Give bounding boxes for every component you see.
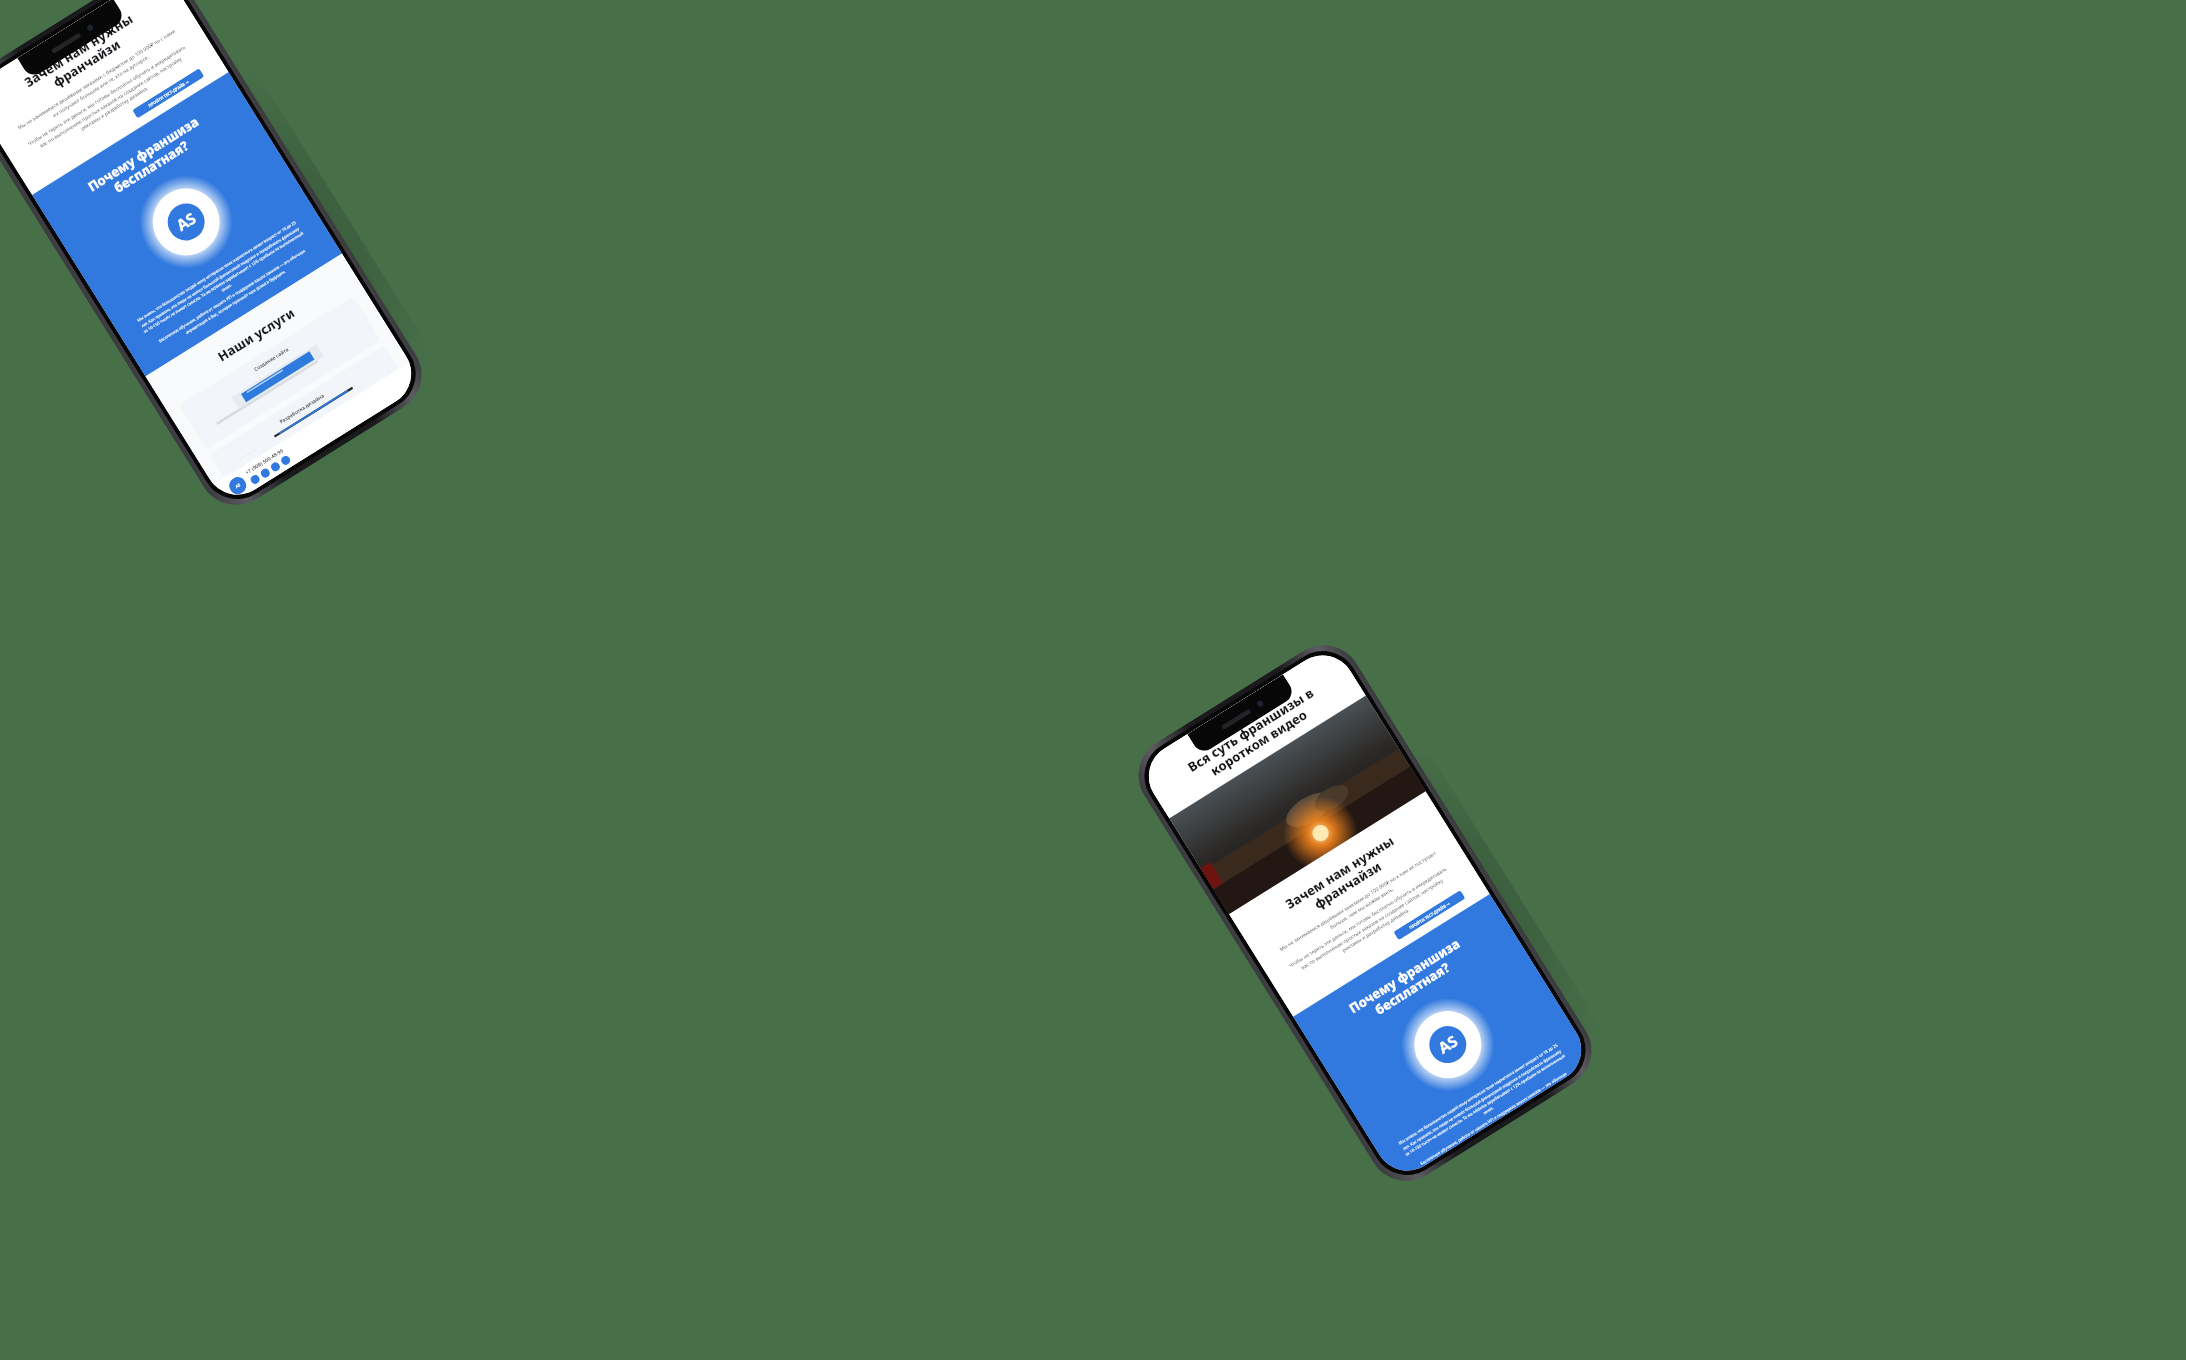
staticText: Зачем нам нужны франчайзи: [0, 0, 170, 120]
button[interactable]: Social link: [279, 454, 292, 467]
button[interactable]: ПРОЙТИ ТЕСТ-ДРАЙВ →: [1393, 890, 1466, 940]
button[interactable]: Вся суть франшизы в коротком видео: [1124, 630, 1606, 1195]
staticText: Чтобы не терять эти деньги, мы готовы бе…: [1287, 865, 1456, 982]
staticText: AS: [234, 482, 241, 489]
staticText: +7 (908) 500-48-99: [244, 447, 285, 476]
button[interactable]: Social link: [269, 461, 282, 473]
staticText: AS: [172, 207, 201, 236]
staticText: ПРОЙТИ ТЕСТ-ДРАЙВ →: [1408, 901, 1451, 930]
staticText: Мы знаем, что большинство людей кому инт…: [135, 219, 308, 340]
staticText: Почему франшиза бесплатная?: [1319, 918, 1497, 1046]
staticText: Наши услуги: [164, 272, 348, 397]
staticText: Разработка дизайна: [278, 392, 326, 425]
staticText: Бесплатное обучение, работа от нашего ИП…: [150, 243, 317, 354]
staticText: ПРОЙТИ ТЕСТ-ДРАЙВ →: [147, 79, 190, 108]
staticText: Мы не занимаемся дешёвыми заказами до 10…: [1277, 849, 1442, 960]
button[interactable]: Addwise logo: [226, 474, 249, 497]
staticText: Зачем нам нужны франчайзи: [1256, 815, 1431, 942]
staticText: Почему франшиза бесплатная?: [58, 96, 236, 225]
button[interactable]: Social link: [249, 473, 261, 486]
staticText: Мы знаем, что большинство людей кому инт…: [1396, 1042, 1570, 1163]
staticText: Бесплатное обучение, работа от нашего ИП…: [1412, 1066, 1576, 1172]
staticText: Создание сайта: [253, 346, 290, 373]
button[interactable]: Разработка дизайна: [209, 345, 399, 478]
button[interactable]: Создание сайта: [179, 296, 381, 449]
button[interactable]: Зачем нам нужны франчайзи: [0, 0, 436, 519]
staticText: AS: [1434, 1030, 1462, 1058]
button[interactable]: ПРОЙТИ ТЕСТ-ДРАЙВ →: [132, 68, 204, 118]
staticText: Вся суть франшизы в коротком видео: [1167, 673, 1342, 799]
staticText: Чтобы не терять эти деньги, мы готовы бе…: [26, 43, 195, 160]
button[interactable]: Social link: [259, 467, 271, 479]
staticText: Мы не занимаемся дешёвыми заказами с бюд…: [16, 27, 181, 138]
